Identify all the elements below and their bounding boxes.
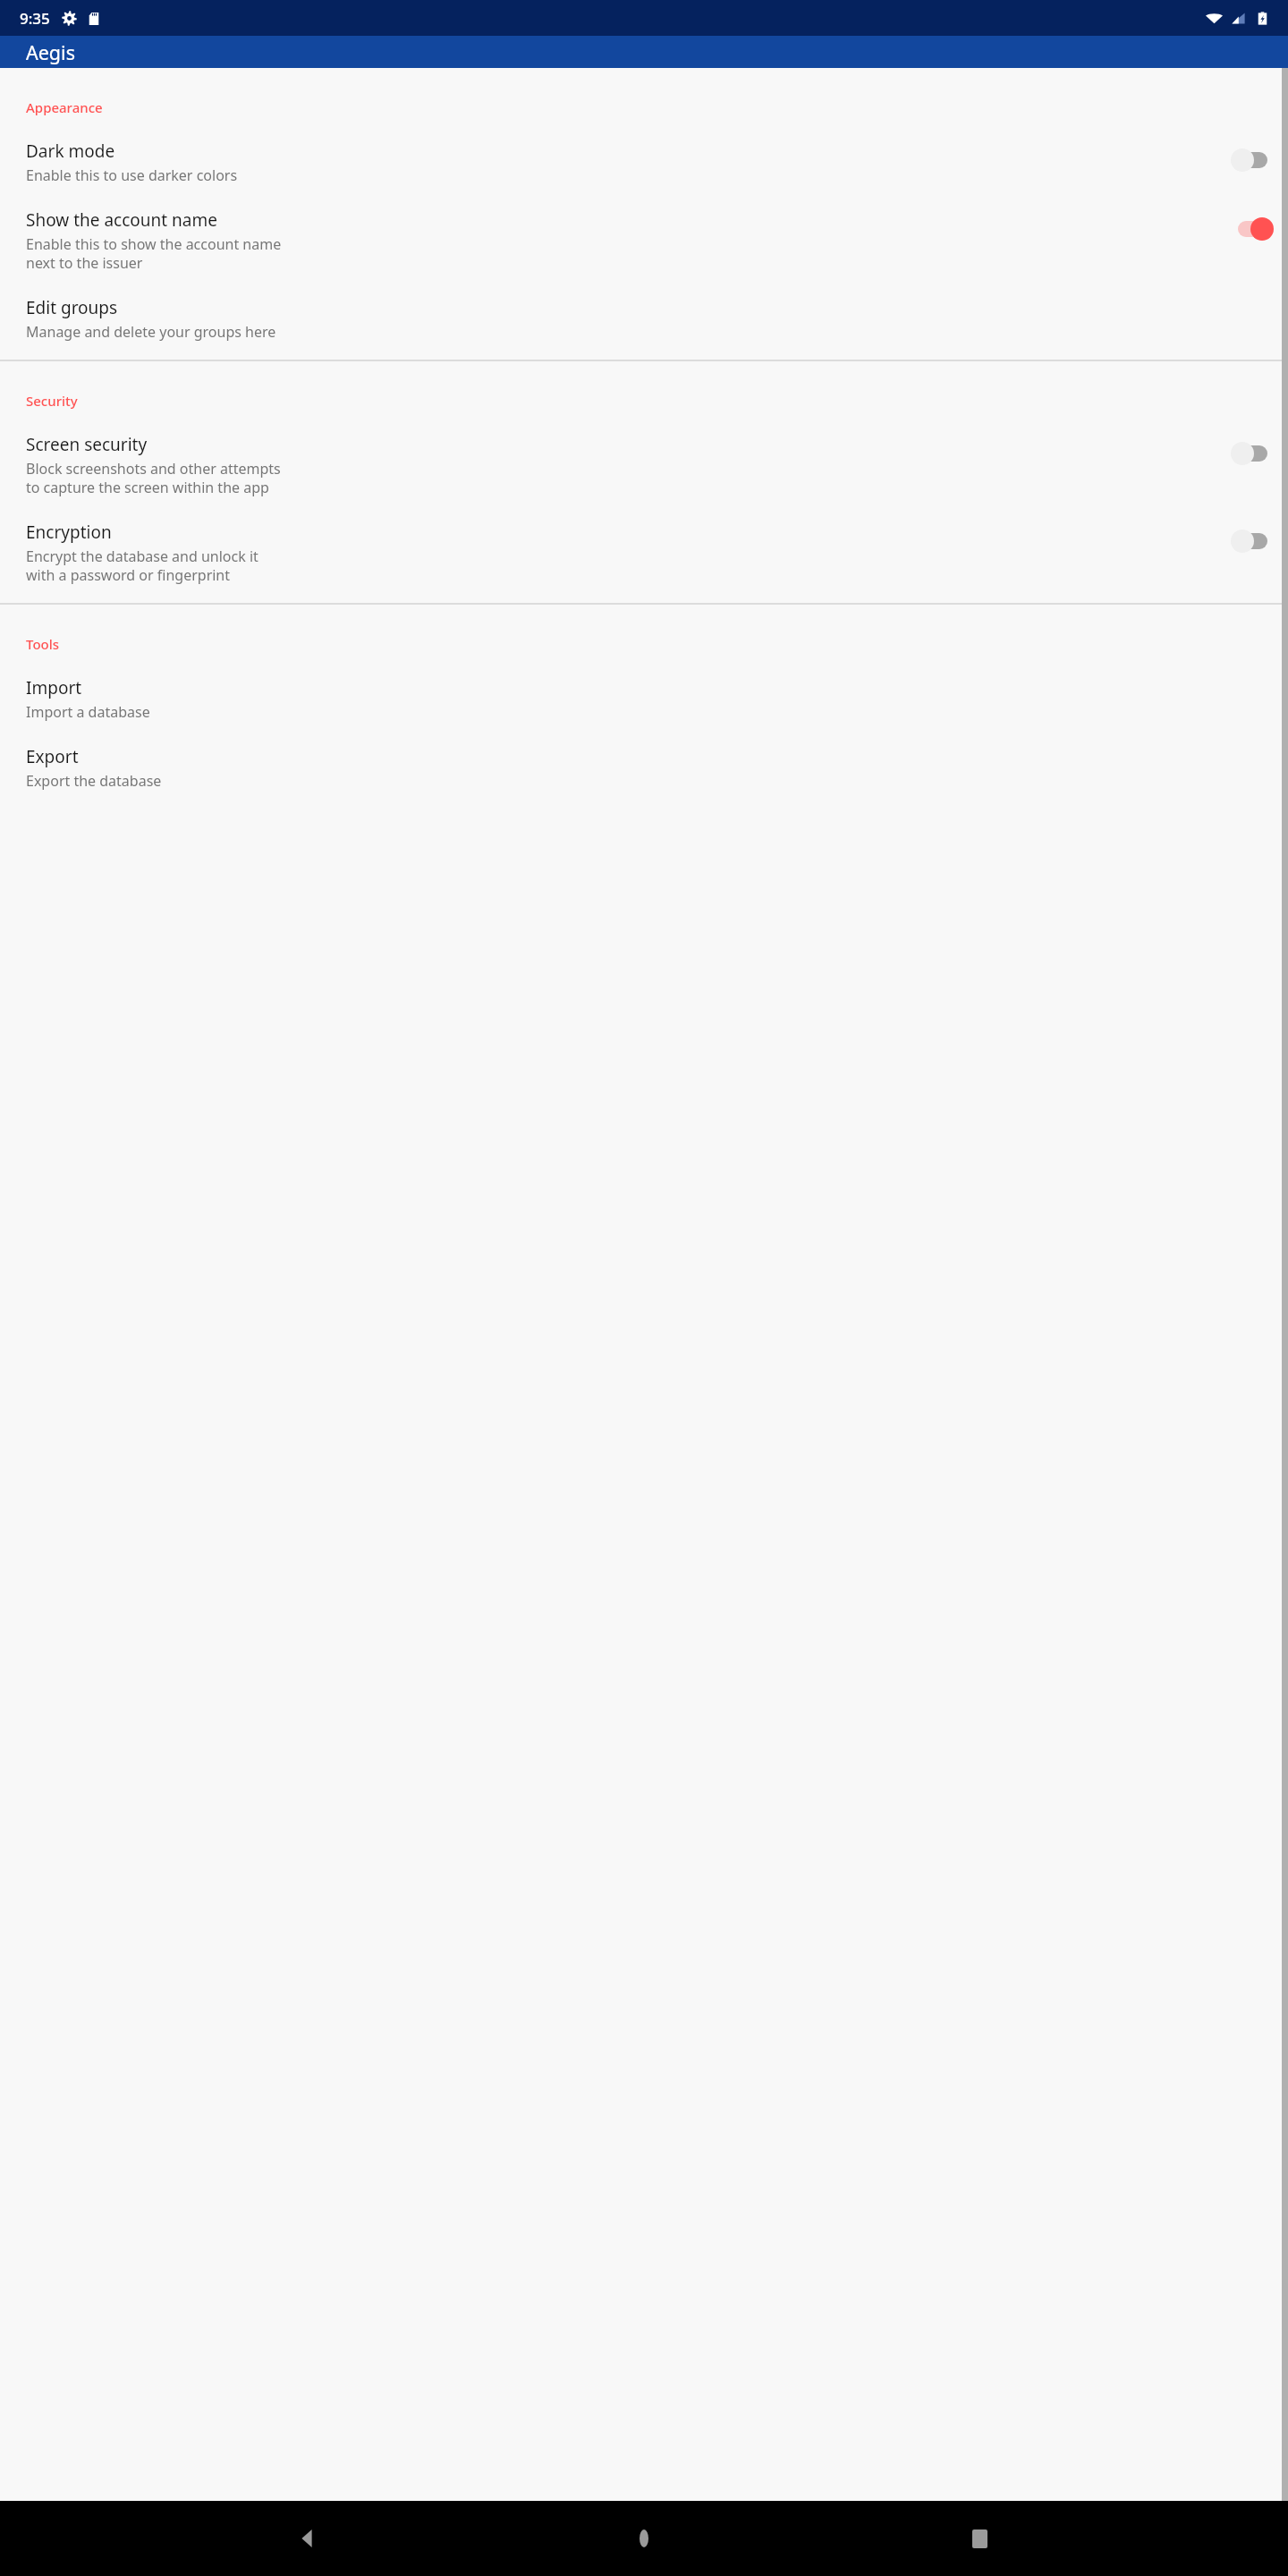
button[interactable]: Back — [282, 2512, 335, 2565]
staticText: Security — [26, 392, 1288, 410]
staticText: Appearance — [26, 98, 1288, 116]
staticText: Block screenshots and other attempts to … — [26, 459, 292, 497]
button[interactable]: Screen security — [1231, 438, 1277, 469]
button[interactable]: Export — [0, 722, 1288, 791]
button[interactable]: Home — [617, 2512, 671, 2565]
button[interactable]: Import — [0, 653, 1288, 722]
staticText: Export the database — [26, 771, 162, 791]
staticText: 9:35 — [20, 8, 50, 29]
button[interactable]: Show the account name — [1231, 214, 1277, 244]
button[interactable]: Encryption — [1231, 526, 1277, 556]
staticText: Manage and delete your groups here — [26, 322, 276, 342]
staticText: Aegis — [26, 39, 75, 65]
button[interactable]: Dark mode — [0, 116, 1288, 185]
staticText: Export — [26, 745, 79, 768]
staticText: Encrypt the database and unlock it with … — [26, 547, 267, 585]
staticText: Encryption — [26, 521, 112, 544]
button[interactable]: Show the account name — [0, 185, 1288, 273]
staticText: Screen security — [26, 433, 148, 456]
button[interactable]: Recents — [953, 2512, 1006, 2565]
staticText: Import — [26, 676, 82, 699]
staticText: Dark mode — [26, 140, 115, 163]
staticText: Enable this to show the account name nex… — [26, 234, 303, 273]
button[interactable]: Dark mode — [1231, 145, 1277, 175]
staticText: Enable this to use darker colors — [26, 165, 238, 185]
button[interactable]: Screen security — [0, 410, 1288, 497]
staticText: Import a database — [26, 702, 150, 722]
staticText: Edit groups — [26, 296, 118, 319]
staticText: Tools — [26, 635, 1288, 653]
staticText: Show the account name — [26, 208, 217, 232]
button[interactable]: Encryption — [0, 497, 1288, 585]
button[interactable]: Edit groups — [0, 273, 1288, 342]
